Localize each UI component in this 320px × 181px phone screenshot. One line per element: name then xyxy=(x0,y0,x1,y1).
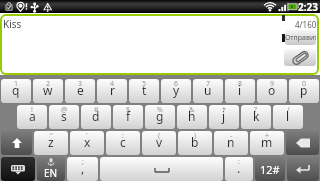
staticText: s xyxy=(61,108,67,124)
button[interactable]: + xyxy=(250,131,284,155)
staticText: 0 xyxy=(302,79,307,89)
staticText: . xyxy=(237,160,241,176)
staticText: % xyxy=(157,105,163,115)
staticText: $ xyxy=(126,105,131,115)
button[interactable]: Enter xyxy=(287,157,319,181)
button[interactable]: 7 xyxy=(193,79,223,103)
staticText: 5 xyxy=(142,79,147,89)
button[interactable]: Attach xyxy=(284,49,316,66)
staticText: 4/160 xyxy=(295,19,317,30)
staticText: ' xyxy=(86,131,88,141)
staticText: e xyxy=(77,82,84,98)
staticText: x xyxy=(84,134,91,150)
staticText: f xyxy=(126,108,131,124)
staticText: q xyxy=(12,82,20,98)
staticText: j xyxy=(222,108,226,124)
button[interactable]: 9 xyxy=(257,79,287,103)
staticText: ! xyxy=(31,105,33,115)
staticText: z xyxy=(48,134,54,150)
staticText: u xyxy=(204,82,212,98)
button[interactable]: 4 xyxy=(97,79,127,103)
button[interactable]: Отправить xyxy=(285,30,316,45)
button[interactable]: 1 xyxy=(1,79,31,103)
staticText: 6 xyxy=(174,79,179,89)
staticText: d xyxy=(92,108,100,124)
button[interactable]: * xyxy=(209,105,239,129)
button[interactable]: 5 xyxy=(129,79,159,103)
staticText: h xyxy=(188,108,196,124)
staticText: i xyxy=(238,82,242,98)
staticText: 9 xyxy=(270,79,275,89)
staticText: 4 xyxy=(110,79,115,89)
button[interactable]: 0 xyxy=(289,79,319,103)
staticText: - xyxy=(230,131,233,141)
staticText: k xyxy=(253,108,260,124)
staticText: a xyxy=(29,108,36,124)
staticText: v xyxy=(156,134,163,150)
staticText: * xyxy=(222,105,226,115)
button[interactable]: ! xyxy=(17,105,47,129)
staticText: c xyxy=(120,134,126,150)
button[interactable]: $ xyxy=(113,105,143,129)
staticText: , xyxy=(81,160,85,176)
staticText: 1 xyxy=(14,79,19,89)
staticText: 3 xyxy=(78,79,83,89)
staticText: 7 xyxy=(206,79,211,89)
staticText: 2:23 xyxy=(298,0,318,13)
staticText: l xyxy=(286,108,290,124)
button[interactable]: Shift xyxy=(1,131,32,155)
button[interactable]: @ xyxy=(49,105,79,129)
staticText: Kiss xyxy=(3,17,22,31)
staticText: + xyxy=(265,131,270,141)
staticText: @ xyxy=(61,105,68,115)
staticText: 12# xyxy=(260,162,280,177)
button[interactable]: : xyxy=(225,157,253,181)
button[interactable]: & xyxy=(177,105,207,129)
staticText: 8 xyxy=(238,79,243,89)
button[interactable] xyxy=(100,157,223,181)
button[interactable]: 6 xyxy=(161,79,191,103)
staticText: 2 xyxy=(46,79,51,89)
button[interactable]: # xyxy=(81,105,111,129)
staticText: o xyxy=(268,82,276,98)
button[interactable]: " xyxy=(34,131,68,155)
button[interactable]: ; xyxy=(67,157,98,181)
button[interactable]: - xyxy=(214,131,248,155)
staticText: EN xyxy=(44,166,58,180)
staticText: n xyxy=(227,134,235,150)
staticText: m xyxy=(261,134,273,150)
staticText: p xyxy=(300,82,308,98)
button[interactable]: 2 xyxy=(33,79,63,103)
staticText: & xyxy=(189,105,195,115)
staticText: g xyxy=(156,108,164,124)
button[interactable]: : xyxy=(106,131,140,155)
staticText: ; xyxy=(82,157,84,167)
staticText: ) xyxy=(194,131,197,141)
button[interactable]: 12# xyxy=(255,157,285,181)
staticText: : xyxy=(122,131,124,141)
staticText: : xyxy=(238,157,240,167)
staticText: r xyxy=(110,82,115,98)
button[interactable]: EN xyxy=(37,157,65,181)
staticText: / xyxy=(287,105,290,115)
staticText: " xyxy=(50,131,53,141)
staticText: Отправить xyxy=(285,33,316,43)
button[interactable]: 3 xyxy=(65,79,95,103)
button[interactable]: ? xyxy=(241,105,271,129)
button[interactable]: Keyboard settings xyxy=(1,157,35,181)
button[interactable]: ( xyxy=(142,131,176,155)
staticText: ( xyxy=(158,131,161,141)
button[interactable]: % xyxy=(145,105,175,129)
button[interactable]: ' xyxy=(70,131,104,155)
button[interactable]: ) xyxy=(178,131,212,155)
staticText: t xyxy=(142,82,147,98)
button[interactable]: Backspace xyxy=(286,131,319,155)
staticText: # xyxy=(94,105,99,115)
button[interactable]: 8 xyxy=(225,79,255,103)
button[interactable]: / xyxy=(273,105,303,129)
staticText: y xyxy=(173,82,180,98)
staticText: b xyxy=(191,134,199,150)
staticText: ? xyxy=(254,105,258,115)
staticText: w xyxy=(43,82,53,98)
